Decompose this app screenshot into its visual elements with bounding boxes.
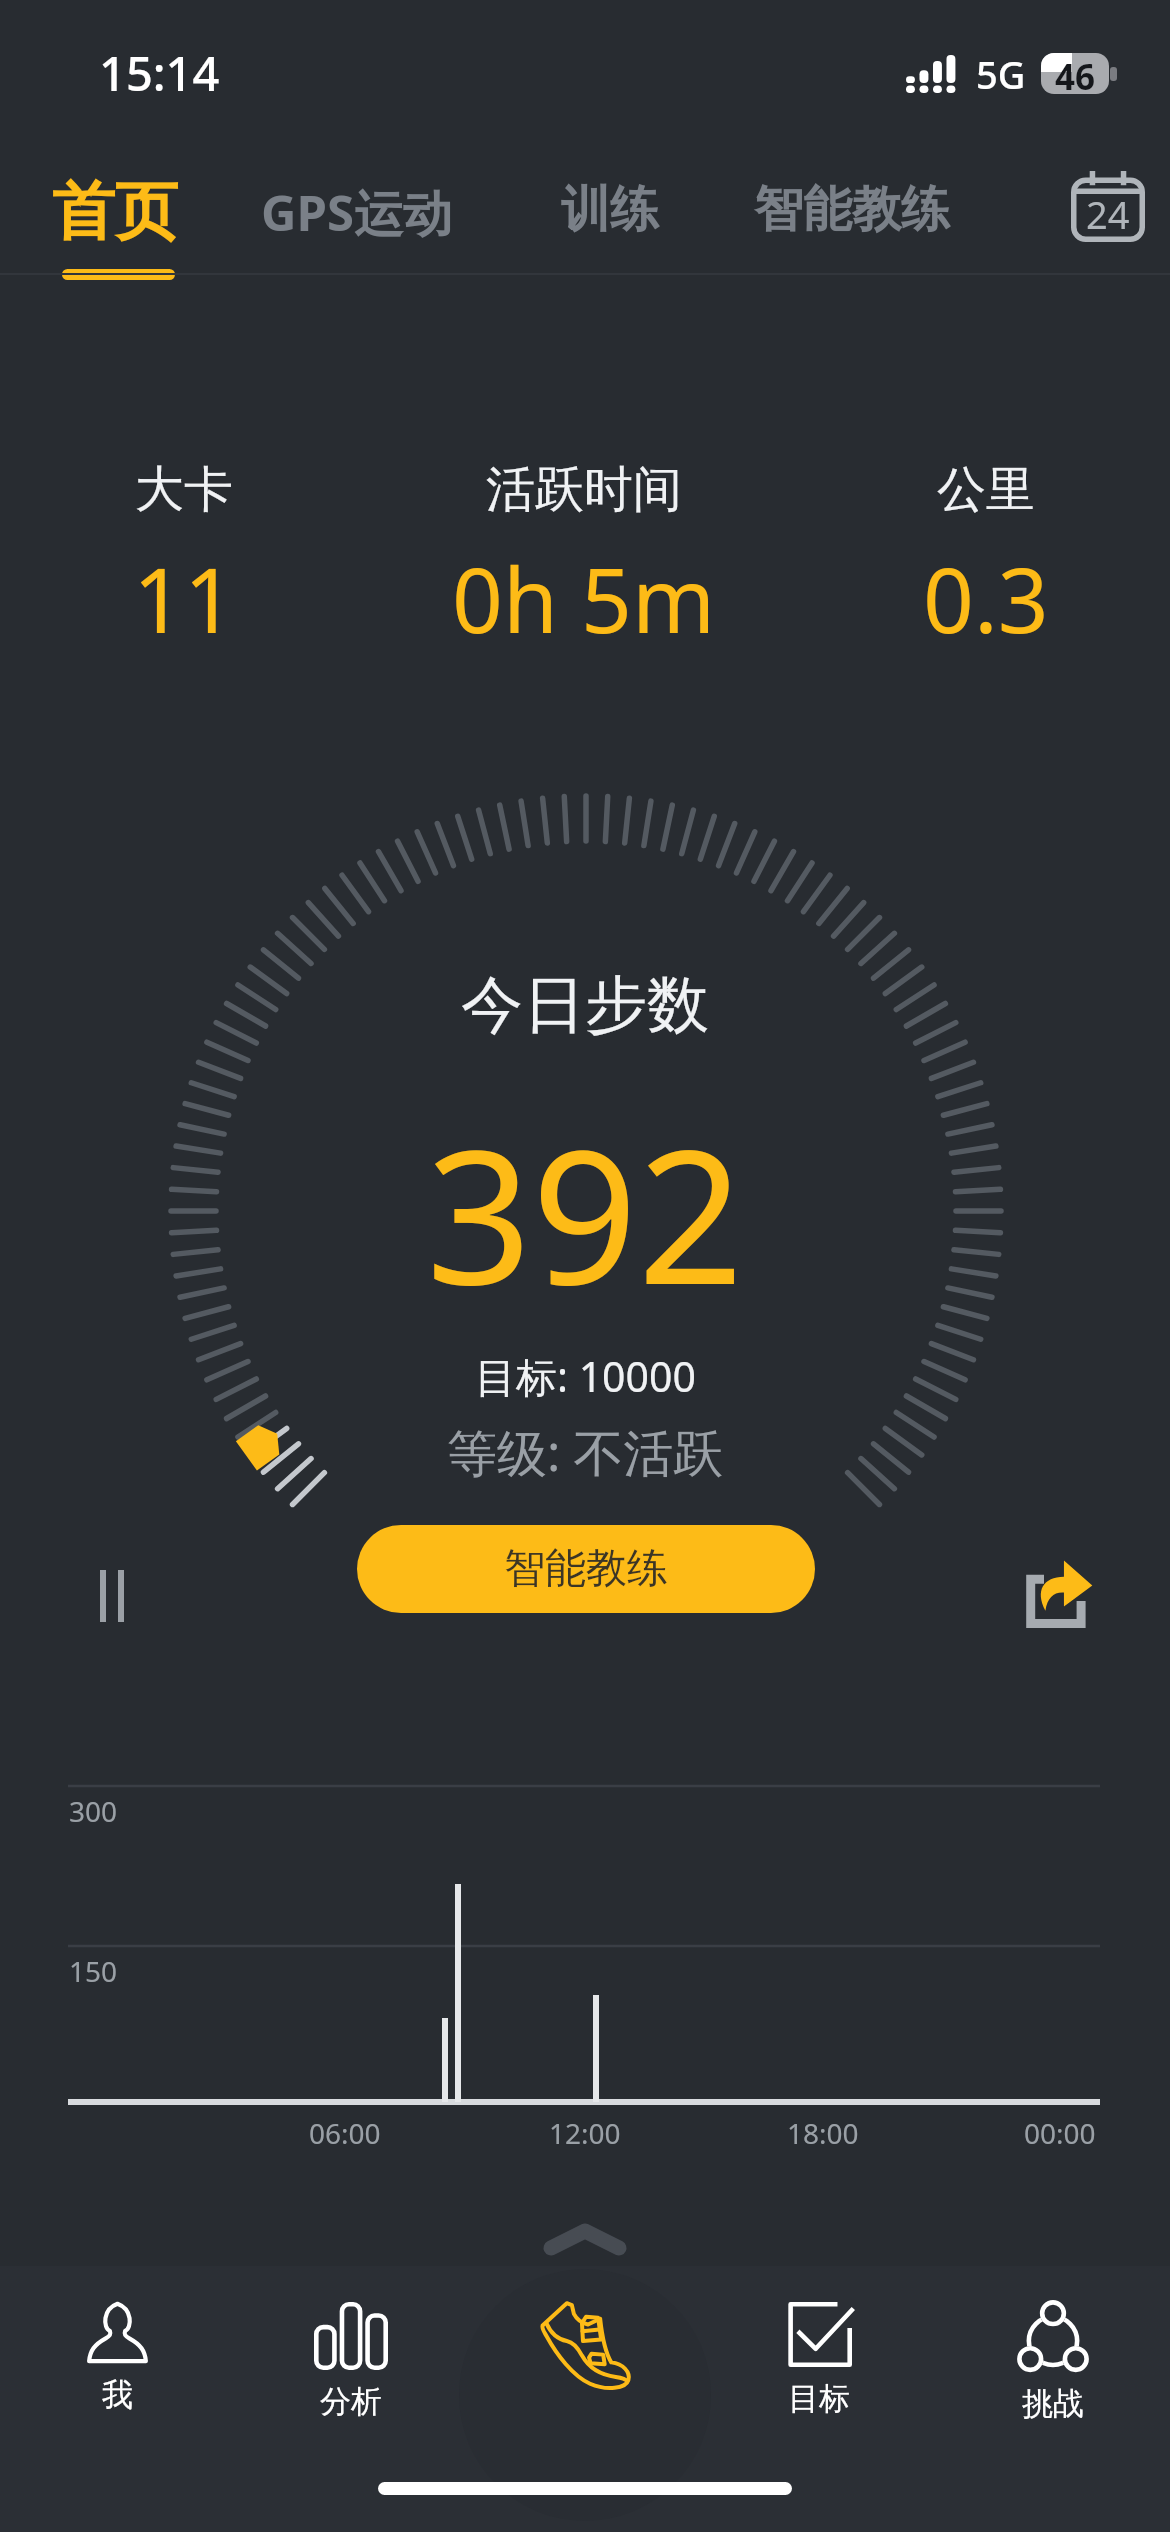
staticText: 大卡 [135,459,233,521]
staticText: 0h 5m [452,538,716,659]
staticText: 活跃时间 [486,459,682,521]
staticText: 训练 [561,179,659,241]
staticText: 智能教练 [504,1543,668,1595]
staticText: 分析 [320,2382,382,2421]
staticText: 今日步数 [461,966,709,1044]
button[interactable]: Steps [468,2266,702,2466]
staticText: 06:00 [309,2114,381,2152]
staticText: 00:00 [1024,2114,1096,2152]
button[interactable]: 训练 [561,179,659,241]
staticText: 12:00 [549,2114,621,2152]
staticText: 11 [133,538,235,659]
staticText: 5G [976,48,1026,100]
button[interactable]: 挑战 [936,2266,1170,2466]
staticText: 挑战 [1022,2384,1084,2423]
staticText: 目标: 10000 [475,1348,696,1404]
button[interactable]: 智能教练 [357,1525,815,1613]
staticText: GPS运动 [261,179,452,246]
button[interactable]: 活跃时间 [414,459,754,679]
staticText: 150 [69,1952,118,1990]
staticText: 46 [1055,53,1096,94]
staticText: 公里 [937,459,1035,521]
staticText: 等级: 不活跃 [447,1418,724,1486]
staticText: 15:14 [99,41,220,105]
button[interactable]: 智能教练 [754,179,950,241]
staticText: 0.3 [923,538,1049,659]
button[interactable]: 公里 [816,459,1156,679]
staticText: 18:00 [787,2114,859,2152]
staticText: 我 [102,2375,133,2414]
button[interactable]: 分析 [234,2266,468,2466]
button[interactable]: Calendar [1066,164,1150,248]
staticText: 392 [426,1086,744,1338]
staticText: 24 [1086,188,1130,240]
button[interactable]: Share [1023,1559,1093,1629]
button[interactable]: GPS运动 [261,179,452,246]
staticText: 智能教练 [754,179,950,241]
staticText: 目标 [788,2379,850,2418]
button[interactable]: 目标 [702,2266,936,2466]
staticText: 300 [69,1792,118,1830]
button[interactable]: 我 [0,2266,234,2466]
button[interactable]: Pause [62,1550,162,1642]
staticText: 首页 [52,172,178,251]
button[interactable]: 首页 [52,172,178,251]
button[interactable]: 大卡 [14,459,354,679]
